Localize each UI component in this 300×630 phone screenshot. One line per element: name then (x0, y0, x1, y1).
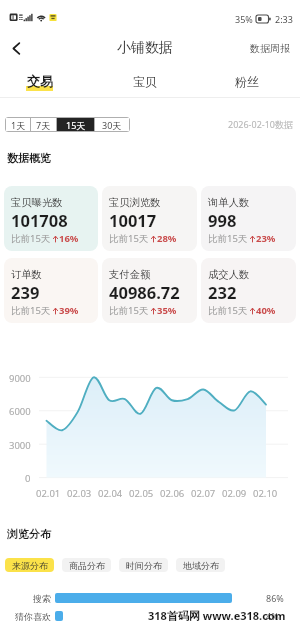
staticText: 35% (235, 13, 253, 25)
staticText: 搜索 (33, 593, 51, 603)
staticText: 比前15天 (11, 304, 51, 317)
button[interactable]: 成交人数 (201, 258, 296, 323)
staticText: 02.10 (253, 487, 278, 500)
staticText: 4% (266, 610, 279, 622)
button[interactable]: 数据周报 (250, 31, 300, 65)
staticText: 16% (59, 232, 79, 245)
staticText: 订单数 (11, 268, 42, 281)
staticText: 猜你喜欢 (15, 611, 51, 621)
button[interactable]: 询单人数 (201, 186, 296, 251)
staticText: 02.04 (98, 487, 123, 500)
staticText: 232 (208, 281, 237, 303)
staticText: 02.06 (160, 487, 185, 500)
staticText: 15天 (66, 119, 86, 131)
staticText: 86% (266, 592, 284, 604)
staticText: 6000 (9, 405, 31, 418)
staticText: 3000 (9, 439, 31, 452)
button[interactable]: 时间分布 (119, 558, 168, 572)
staticText: 浏览分布 (7, 527, 51, 541)
staticText: 时间分布 (126, 560, 162, 571)
staticText: 比前15天 (109, 232, 149, 245)
staticText: 地域分布 (183, 560, 219, 571)
staticText: 比前15天 (208, 304, 248, 317)
staticText: 交易 (27, 73, 53, 89)
button[interactable]: 来源分布 (5, 558, 54, 572)
button[interactable]: 宝贝曝光数 (4, 186, 98, 251)
staticText: 比前15天 (11, 232, 51, 245)
staticText: 239 (11, 281, 40, 303)
staticText: 2:33 (275, 13, 293, 25)
staticText: 40986.72 (109, 281, 180, 303)
staticText: 询单人数 (208, 196, 250, 209)
staticText: 10017 (109, 209, 157, 231)
staticText: 成交人数 (208, 268, 250, 281)
staticText: 数据概览 (7, 151, 51, 165)
staticText: 0 (25, 472, 31, 485)
staticText: 02.05 (129, 487, 154, 500)
button[interactable]: 7天 (31, 118, 56, 131)
staticText: 9000 (9, 372, 31, 385)
staticText: 宝贝浏览数 (109, 196, 161, 209)
button[interactable]: 返回 (0, 32, 32, 64)
staticText: 101708 (11, 209, 68, 231)
button[interactable]: 1天 (6, 118, 30, 131)
staticText: 来源分布 (12, 560, 48, 571)
button[interactable]: 商品分布 (62, 558, 111, 572)
staticText: 宝贝曝光数 (11, 196, 63, 209)
button[interactable]: 宝贝 (115, 64, 175, 98)
staticText: 02.03 (67, 487, 92, 500)
staticText: 02.01 (36, 487, 61, 500)
button[interactable]: 地域分布 (176, 558, 225, 572)
staticText: 小铺数据 (117, 39, 173, 57)
staticText: 02.07 (191, 487, 216, 500)
staticText: 39% (59, 304, 79, 317)
staticText: 2026-02-10数据 (228, 118, 293, 130)
staticText: 7天 (36, 119, 51, 131)
staticText: 商品分布 (69, 560, 105, 571)
button[interactable]: 30天 (95, 118, 129, 131)
staticText: 粉丝 (235, 74, 259, 89)
staticText: 318首码网 www.e318.com (148, 608, 286, 623)
staticText: 宝贝 (133, 74, 157, 89)
button[interactable]: 支付金额 (102, 258, 197, 323)
button[interactable]: 粉丝 (217, 64, 277, 98)
staticText: 40% (256, 304, 276, 317)
staticText: 比前15天 (109, 304, 149, 317)
staticText: 支付金额 (109, 268, 151, 281)
staticText: 1天 (11, 119, 26, 131)
button[interactable]: 15天 (57, 118, 94, 131)
button[interactable]: 宝贝浏览数 (102, 186, 197, 251)
staticText: 28% (157, 232, 177, 245)
staticText: 998 (208, 209, 237, 231)
staticText: 02.09 (222, 487, 247, 500)
button[interactable]: 交易 (9, 64, 69, 98)
staticText: 数据周报 (250, 42, 290, 55)
staticText: 35% (157, 304, 177, 317)
staticText: 比前15天 (208, 232, 248, 245)
staticText: 23% (256, 232, 276, 245)
staticText: 30天 (102, 119, 122, 131)
button[interactable]: 订单数 (4, 258, 98, 323)
